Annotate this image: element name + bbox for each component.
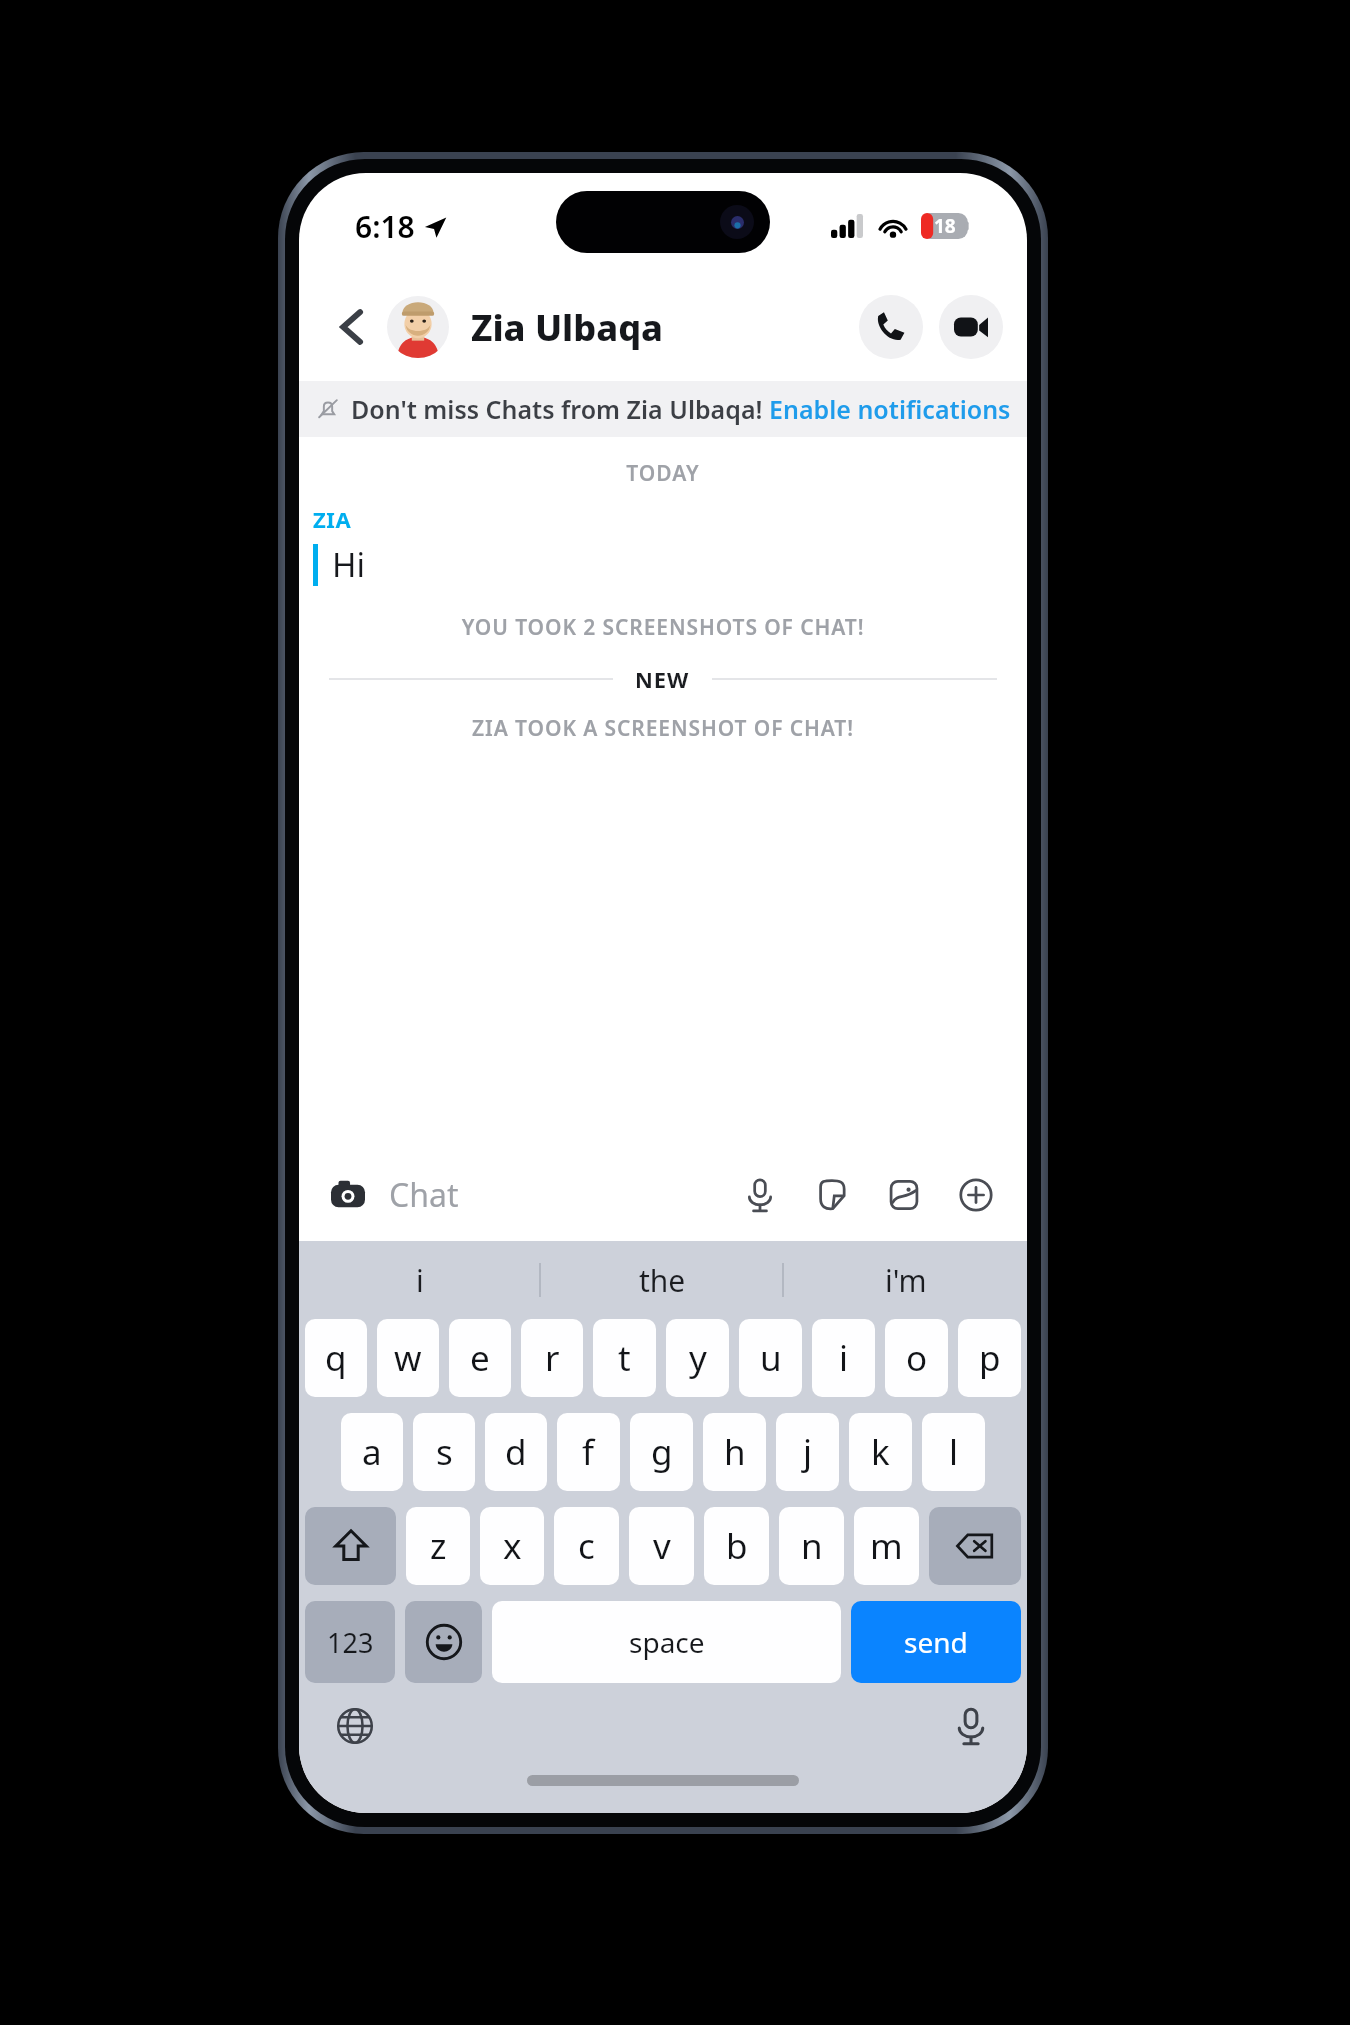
button[interactable]: r (521, 1319, 583, 1397)
button[interactable]: p (958, 1319, 1021, 1397)
button[interactable]: Dictate (943, 1698, 999, 1754)
button[interactable]: b (704, 1507, 769, 1585)
staticText: l (949, 1428, 959, 1476)
staticText: ZIA (313, 504, 352, 534)
staticText: 6:18 (355, 206, 415, 247)
staticText: NEW (635, 664, 690, 694)
button[interactable]: d (485, 1413, 547, 1491)
staticText: Zia Ulbaqa (471, 303, 859, 352)
staticText: 18 (934, 213, 956, 239)
staticText: s (436, 1428, 453, 1476)
staticText: Hi (332, 542, 365, 587)
staticText: k (871, 1428, 890, 1476)
button[interactable]: More (951, 1170, 1001, 1220)
button[interactable]: i (299, 1241, 541, 1319)
button[interactable]: Photos (879, 1170, 929, 1220)
staticText: c (578, 1522, 595, 1570)
staticText: f (582, 1428, 595, 1476)
staticText: x (503, 1522, 522, 1570)
button[interactable]: w (377, 1319, 439, 1397)
button[interactable]: Back (323, 298, 381, 356)
staticText: y (689, 1334, 707, 1382)
button[interactable]: h (703, 1413, 766, 1491)
staticText: YOU TOOK 2 SCREENSHOTS OF CHAT! (299, 613, 1027, 642)
button[interactable]: l (922, 1413, 985, 1491)
button[interactable]: u (739, 1319, 802, 1397)
button[interactable]: the (541, 1241, 784, 1319)
staticText: i (416, 1260, 424, 1301)
button[interactable]: q (305, 1319, 367, 1397)
staticText: t (618, 1334, 631, 1382)
staticText: a (362, 1428, 382, 1476)
button[interactable]: Don't miss Chats from Zia Ulbaqa! (299, 381, 1027, 437)
staticText: the (639, 1260, 686, 1301)
button[interactable]: Video call (939, 295, 1003, 359)
staticText: n (801, 1522, 823, 1570)
button[interactable]: Change keyboard (327, 1698, 383, 1754)
staticText: g (651, 1428, 673, 1476)
staticText: p (979, 1334, 1001, 1382)
button[interactable]: e (449, 1319, 511, 1397)
button[interactable]: f (557, 1413, 620, 1491)
button[interactable]: i (812, 1319, 875, 1397)
button[interactable]: Voice note (735, 1170, 785, 1220)
button[interactable]: j (776, 1413, 839, 1491)
staticText: z (430, 1522, 447, 1570)
button[interactable]: 123 (305, 1601, 395, 1683)
staticText: Enable notifications (769, 392, 1011, 426)
button[interactable]: ZIA (313, 504, 1027, 587)
button[interactable]: Call (859, 295, 923, 359)
staticText: q (325, 1334, 347, 1382)
staticText: ZIA TOOK A SCREENSHOT OF CHAT! (299, 714, 1027, 743)
button[interactable]: space (492, 1601, 841, 1683)
button[interactable]: send (851, 1601, 1021, 1683)
button[interactable]: v (629, 1507, 694, 1585)
staticText: b (726, 1522, 748, 1570)
staticText: TODAY (299, 459, 1027, 488)
button[interactable]: s (413, 1413, 475, 1491)
button[interactable]: z (406, 1507, 470, 1585)
staticText: j (803, 1428, 813, 1476)
button[interactable]: y (666, 1319, 729, 1397)
button[interactable]: i'm (784, 1241, 1027, 1319)
button[interactable]: Camera (325, 1172, 371, 1218)
button[interactable]: m (854, 1507, 919, 1585)
staticText: h (724, 1428, 746, 1476)
button[interactable]: o (885, 1319, 948, 1397)
staticText: space (629, 1623, 705, 1661)
staticText: m (870, 1522, 903, 1570)
button[interactable]: Key (305, 1507, 396, 1585)
staticText: v (653, 1522, 671, 1570)
staticText: o (906, 1334, 928, 1382)
button[interactable]: a (341, 1413, 403, 1491)
staticText: u (760, 1334, 782, 1382)
button[interactable]: g (630, 1413, 693, 1491)
staticText: d (505, 1428, 527, 1476)
button[interactable]: c (554, 1507, 619, 1585)
staticText: Don't miss Chats from Zia Ulbaqa! (351, 392, 769, 426)
staticText: r (545, 1334, 560, 1382)
button[interactable]: Profile (387, 296, 449, 358)
staticText: i'm (885, 1260, 927, 1301)
button[interactable]: n (779, 1507, 844, 1585)
button[interactable]: t (593, 1319, 656, 1397)
staticText: 123 (327, 1624, 374, 1661)
staticText: w (394, 1334, 422, 1382)
button[interactable]: Stickers (807, 1170, 857, 1220)
button[interactable]: k (849, 1413, 912, 1491)
button[interactable]: Key (929, 1507, 1021, 1585)
button[interactable]: x (480, 1507, 544, 1585)
staticText: send (904, 1623, 968, 1661)
staticText: e (470, 1334, 490, 1382)
staticText: i (839, 1334, 849, 1382)
button[interactable]: Emoji (405, 1601, 482, 1683)
staticText: Chat (389, 1173, 735, 1217)
